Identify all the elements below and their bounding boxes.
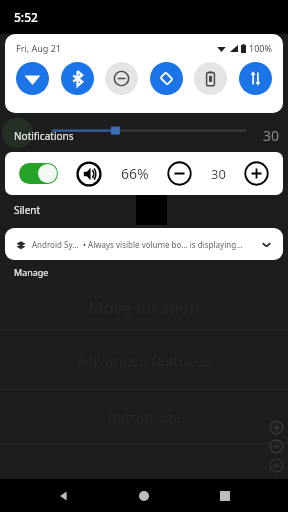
button[interactable]: Decrease size — [267, 437, 286, 456]
staticText: 30 — [211, 165, 226, 183]
staticText: Notifications — [14, 129, 74, 143]
button[interactable]: Volume — [76, 161, 102, 187]
button[interactable]: Wi-Fi — [16, 62, 49, 95]
button[interactable]: Android Sy… — [5, 228, 283, 260]
button[interactable]: Auto rotate — [150, 62, 183, 95]
button[interactable]: Battery Saver — [194, 62, 227, 95]
staticText: 66% — [121, 164, 149, 183]
staticText: Silent — [14, 203, 41, 217]
button[interactable]: Notifications — [0, 118, 288, 148]
staticText: Manage — [14, 266, 49, 278]
button[interactable]: Increase size — [267, 418, 286, 437]
button[interactable]: Bluetooth — [61, 62, 94, 95]
button[interactable]: Mobile data — [239, 62, 272, 95]
button[interactable]: Do Not Disturb — [105, 62, 138, 95]
staticText: Android Sy… — [32, 239, 79, 250]
button[interactable]: Back — [45, 479, 81, 512]
staticText: 100% — [249, 42, 272, 54]
button[interactable]: Home — [126, 479, 162, 512]
staticText: Fri, Aug 21 — [16, 42, 61, 54]
button[interactable]: Mute — [267, 456, 286, 475]
button[interactable]: Decrease — [167, 161, 192, 186]
button[interactable]: Manage — [0, 260, 288, 284]
button[interactable]: Increase — [244, 161, 269, 186]
staticText: • Always visible volume bo… is displayin… — [83, 239, 243, 250]
button[interactable]: Sound toggle — [19, 163, 58, 184]
staticText: 5:52 — [14, 9, 38, 25]
staticText: 30 — [263, 126, 280, 145]
button[interactable]: Recents — [207, 479, 243, 512]
